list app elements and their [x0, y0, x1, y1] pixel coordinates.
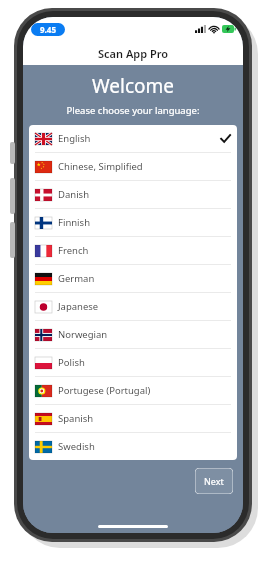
- button[interactable]: Next: [195, 468, 233, 494]
- button[interactable]: Norwegian: [29, 320, 237, 348]
- staticText: Portugese (Portugal): [58, 384, 151, 397]
- button[interactable]: Danish: [29, 180, 237, 208]
- staticText: Finnish: [58, 216, 90, 229]
- staticText: Welcome: [23, 73, 243, 99]
- staticText: Next: [204, 475, 224, 487]
- button[interactable]: Swedish: [29, 432, 237, 460]
- button[interactable]: French: [29, 236, 237, 264]
- staticText: French: [58, 244, 89, 257]
- staticText: 9.45: [40, 24, 56, 35]
- button[interactable]: Chinese, Simplified: [29, 152, 237, 180]
- button[interactable]: Japanese: [29, 292, 237, 320]
- button[interactable]: German: [29, 264, 237, 292]
- staticText: Japanese: [58, 300, 99, 313]
- button[interactable]: Finnish: [29, 208, 237, 236]
- staticText: German: [58, 272, 95, 285]
- staticText: Please choose your language:: [23, 104, 243, 117]
- staticText: Danish: [58, 188, 90, 201]
- button[interactable]: English: [29, 125, 237, 152]
- staticText: English: [58, 132, 91, 145]
- staticText: Chinese, Simplified: [58, 160, 143, 173]
- staticText: Scan App Pro: [98, 46, 169, 61]
- button[interactable]: Polish: [29, 348, 237, 376]
- button[interactable]: Spanish: [29, 404, 237, 432]
- button[interactable]: Portugese (Portugal): [29, 376, 237, 404]
- staticText: Polish: [58, 356, 85, 369]
- staticText: Norwegian: [58, 328, 108, 341]
- staticText: Swedish: [58, 440, 95, 453]
- staticText: Spanish: [58, 412, 94, 425]
